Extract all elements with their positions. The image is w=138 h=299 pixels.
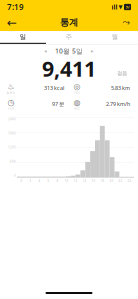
staticText: 1800 <box>8 132 16 135</box>
staticText: 9,411 <box>42 54 96 83</box>
staticText: 2.79 km/h <box>106 100 130 108</box>
button[interactable]: Back <box>3 14 21 31</box>
button[interactable]: Next day <box>89 46 96 55</box>
staticText: 8 <box>56 179 58 183</box>
staticText: 14 <box>82 179 86 183</box>
staticText: 97 분 <box>52 100 64 108</box>
staticText: ◂ <box>44 48 47 54</box>
staticText: 월 <box>111 33 118 41</box>
staticText: ♨ <box>7 82 14 91</box>
button[interactable]: 월 <box>92 31 138 44</box>
staticText: 7:19 <box>7 2 24 12</box>
staticText: 시간 <box>8 107 14 110</box>
staticText: 22 <box>118 179 122 183</box>
staticText: 통계 <box>60 17 78 28</box>
staticText: 0 <box>14 174 16 177</box>
staticText: 97 <box>125 4 129 10</box>
button[interactable]: 주 <box>46 31 92 44</box>
staticText: 20 <box>109 179 113 183</box>
staticText: 걸음 <box>117 70 127 76</box>
staticText: 거리 <box>74 91 80 94</box>
staticText: 4 <box>38 179 40 183</box>
staticText: ⤳ <box>122 18 129 27</box>
button[interactable]: Previous day <box>42 46 49 55</box>
staticText: ◷ <box>7 98 14 107</box>
staticText: 24 <box>127 179 131 183</box>
staticText: 칼로리 <box>6 91 15 94</box>
staticText: 2400 <box>8 117 16 121</box>
button[interactable]: Share <box>117 14 135 31</box>
staticText: ◍ <box>73 98 80 107</box>
staticText: 1200 <box>8 146 16 149</box>
staticText: 18 <box>100 179 104 183</box>
staticText: 주 <box>65 33 72 41</box>
staticText: 10월 5일 <box>55 47 83 55</box>
staticText: 600 <box>10 160 16 163</box>
staticText: 2 <box>29 179 31 183</box>
staticText: 10 <box>64 179 68 183</box>
staticText: ıll <box>111 3 117 11</box>
staticText: ▸ <box>91 48 94 54</box>
staticText: ▼ <box>118 4 122 10</box>
staticText: ← <box>7 16 17 29</box>
staticText: 6 <box>47 179 49 183</box>
staticText: 12 <box>73 179 77 183</box>
staticText: 0 <box>20 179 22 183</box>
button[interactable]: 일 <box>0 31 46 44</box>
staticText: 속도 <box>74 107 80 110</box>
staticText: 16 <box>91 179 95 183</box>
staticText: 313 kcal <box>44 84 64 92</box>
staticText: 일 <box>19 33 26 41</box>
staticText: ◎ <box>73 82 80 91</box>
staticText: 5.83 km <box>111 84 130 92</box>
